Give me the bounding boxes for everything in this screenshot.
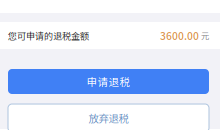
staticText: 元 xyxy=(201,29,209,41)
staticText: 您可申请的退税金额 xyxy=(8,29,89,42)
staticText: 放弃退税 xyxy=(88,110,128,126)
staticText: 3600.00 xyxy=(160,28,199,43)
staticText: 申请退税 xyxy=(86,74,130,89)
button[interactable]: 放弃退税 xyxy=(8,104,209,130)
button[interactable]: 申请退税 xyxy=(8,69,209,94)
